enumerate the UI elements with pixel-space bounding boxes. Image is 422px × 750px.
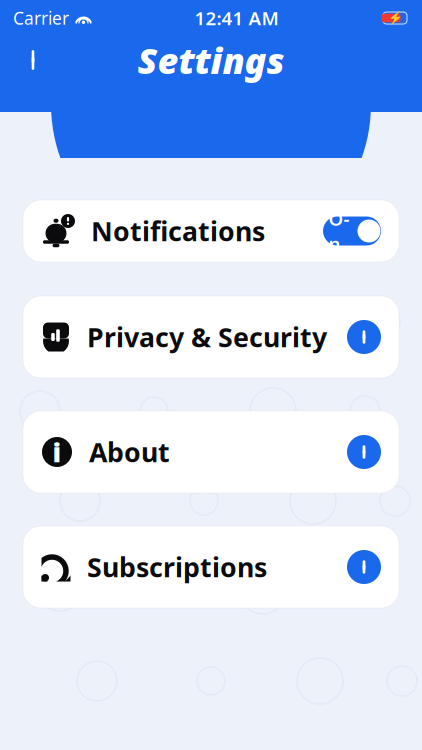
staticText: Subscriptions <box>87 549 267 585</box>
staticText: About <box>89 434 170 470</box>
staticText: ⚡ <box>387 11 402 25</box>
staticText: Carrier <box>13 6 69 29</box>
staticText: Settings <box>137 36 284 84</box>
button[interactable]: i <box>23 411 399 493</box>
button[interactable]: Back <box>13 40 53 80</box>
staticText: Privacy & Security <box>87 319 327 355</box>
button[interactable]: Subscriptions <box>23 526 399 608</box>
button[interactable]: Notifications <box>23 200 399 262</box>
staticText: On <box>328 206 349 256</box>
staticText: 12:41 AM <box>194 6 278 30</box>
staticText: i <box>52 434 61 470</box>
button[interactable]: Privacy & Security <box>23 296 399 378</box>
staticText: Notifications <box>91 213 265 249</box>
